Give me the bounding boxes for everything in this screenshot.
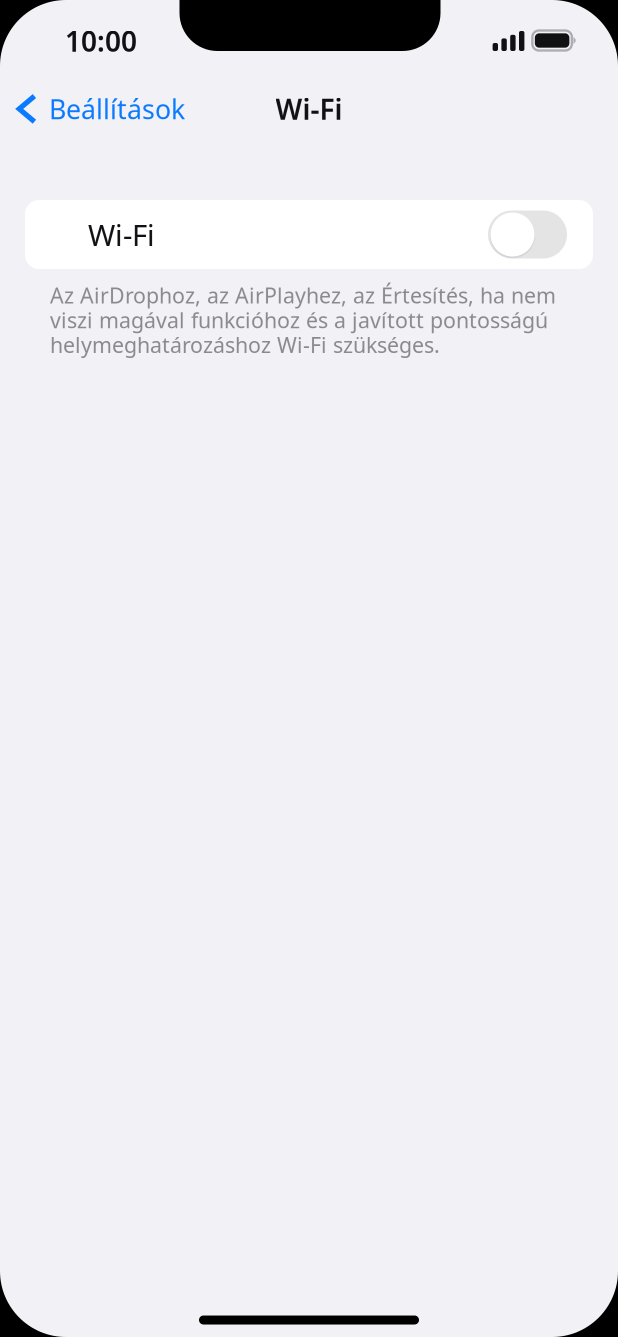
button[interactable]: Wi-Fi, off [25,200,593,269]
staticText: helymeghatározáshoz Wi-Fi szükséges. [50,331,440,359]
button[interactable]: Back to Beállítások [0,78,230,140]
staticText: Wi-Fi [275,90,342,128]
staticText: Az AirDrophoz, az AirPlayhez, az Értesít… [50,281,556,309]
staticText: Wi-Fi [88,215,155,254]
staticText: 10:00 [65,22,137,60]
staticText: Beállítások [49,91,185,127]
staticText: viszi magával funkcióhoz és a javított p… [50,306,548,334]
